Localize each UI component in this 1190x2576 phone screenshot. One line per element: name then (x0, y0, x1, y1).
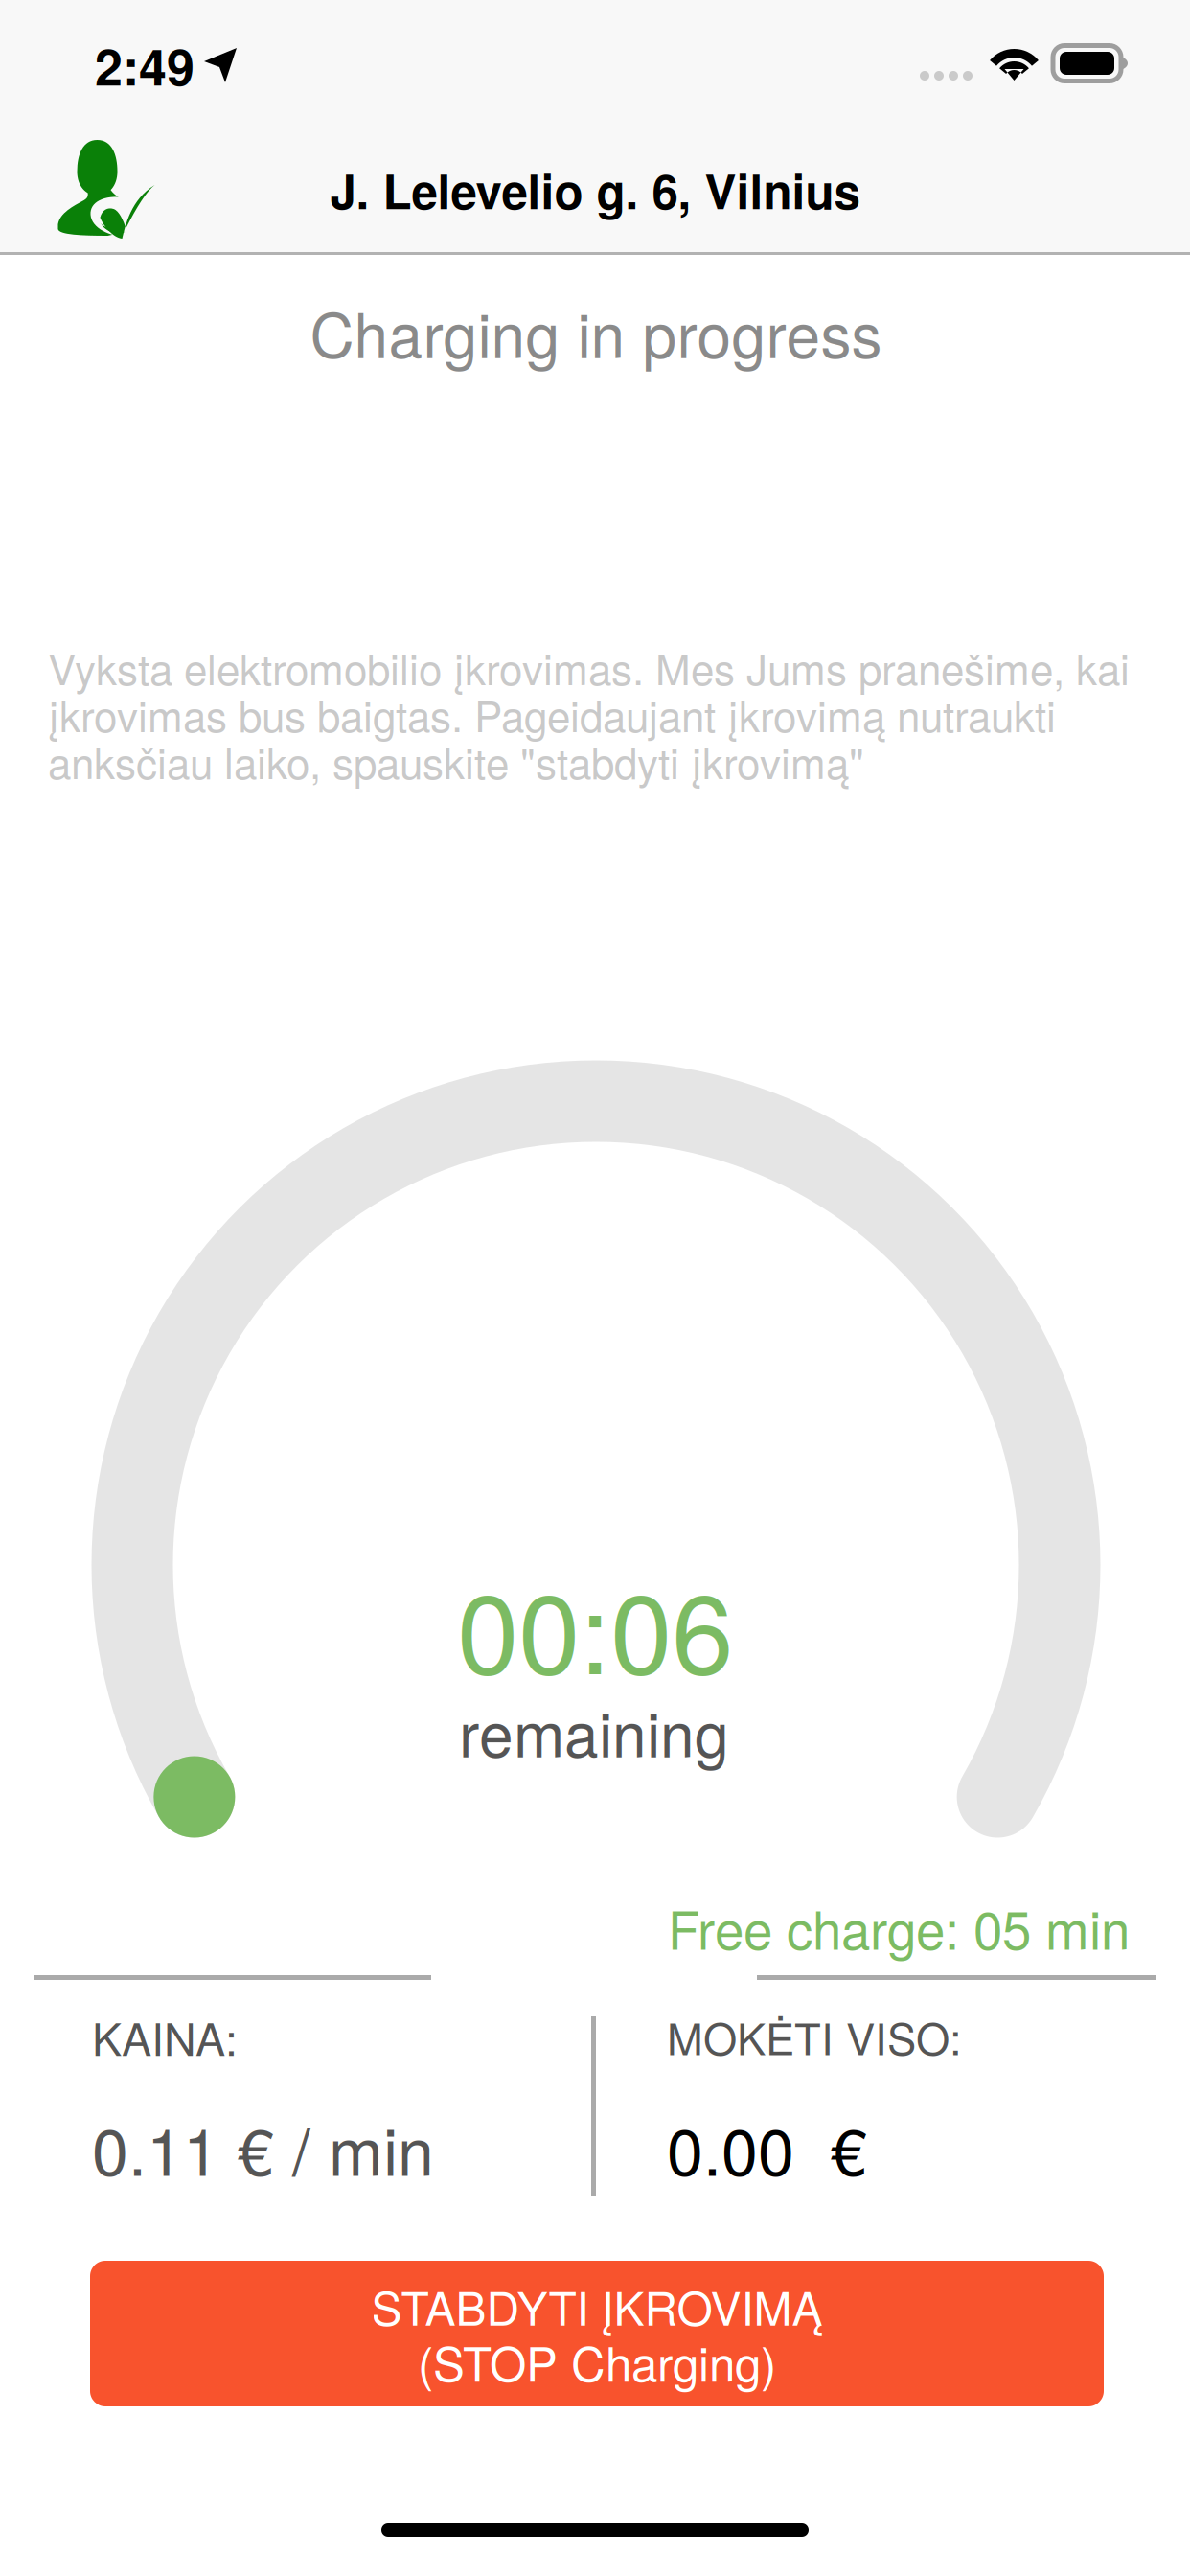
staticText: Vyksta elektromobilio įkrovimas. Mes Jum… (48, 637, 1130, 791)
staticText: Free charge: 05 min (668, 1890, 1130, 1965)
staticText: STABDYTI ĮKROVIMĄ (371, 2273, 823, 2339)
staticText: Charging in progress (310, 288, 882, 375)
staticText: remaining (459, 1687, 729, 1775)
staticText: 00:06 (457, 1547, 733, 1706)
staticText: 2:49 (95, 30, 195, 101)
button[interactable]: Account verified (34, 125, 178, 251)
button[interactable]: STABDYTI ĮKROVIMĄ (90, 2261, 1104, 2406)
staticText: 0.11 € / min (92, 2101, 434, 2194)
staticText: 0.00 € (667, 2101, 867, 2194)
staticText: (STOP Charging) (418, 2328, 776, 2395)
staticText: MOKĖTI VISO: (667, 2005, 962, 2068)
staticText: J. Lelevelio g. 6, Vilnius (330, 156, 860, 224)
staticText: KAINA: (92, 2004, 238, 2068)
